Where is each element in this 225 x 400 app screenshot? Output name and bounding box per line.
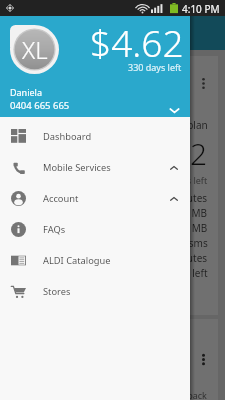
staticText: $ 22	[148, 133, 208, 174]
staticText: Recharge pack	[145, 389, 207, 400]
staticText: 0404 665 665	[10, 99, 70, 112]
staticText: 30 days left	[159, 174, 208, 186]
staticText: ALDI Catalogue	[43, 254, 111, 267]
staticText: XL	[22, 33, 48, 66]
button[interactable]: Dashboard	[0, 121, 190, 152]
button[interactable]: Profile	[10, 25, 59, 74]
staticText: Mobile Services	[43, 161, 111, 174]
staticText: 200 sms	[169, 236, 208, 250]
staticText: 100 minutes	[149, 251, 208, 265]
button[interactable]: Stores	[0, 276, 190, 307]
staticText: 4:10 PM	[182, 2, 220, 16]
staticText: Daniela	[10, 86, 42, 98]
staticText: 330 days left	[128, 61, 182, 73]
staticText: Your current plan	[126, 118, 208, 132]
button[interactable]: Expand account	[167, 103, 182, 118]
staticText: Stores	[43, 285, 71, 298]
button[interactable]: More options	[198, 354, 209, 365]
staticText: FAQs	[43, 223, 66, 236]
button[interactable]: FAQs	[0, 214, 190, 245]
staticText: $4.62	[90, 17, 184, 67]
staticText: 300 minutes	[149, 191, 208, 205]
button[interactable]: More options	[198, 78, 209, 89]
button[interactable]: Account	[0, 183, 190, 214]
staticText: 500 MB	[172, 221, 208, 235]
staticText: Dashboard	[43, 130, 92, 143]
staticText: 30 days left	[154, 266, 208, 280]
staticText: Account	[43, 192, 79, 205]
button[interactable]: ALDI Catalogue	[0, 245, 190, 276]
staticText: 1000 MB	[166, 206, 208, 220]
button[interactable]: Mobile Services	[0, 152, 190, 183]
